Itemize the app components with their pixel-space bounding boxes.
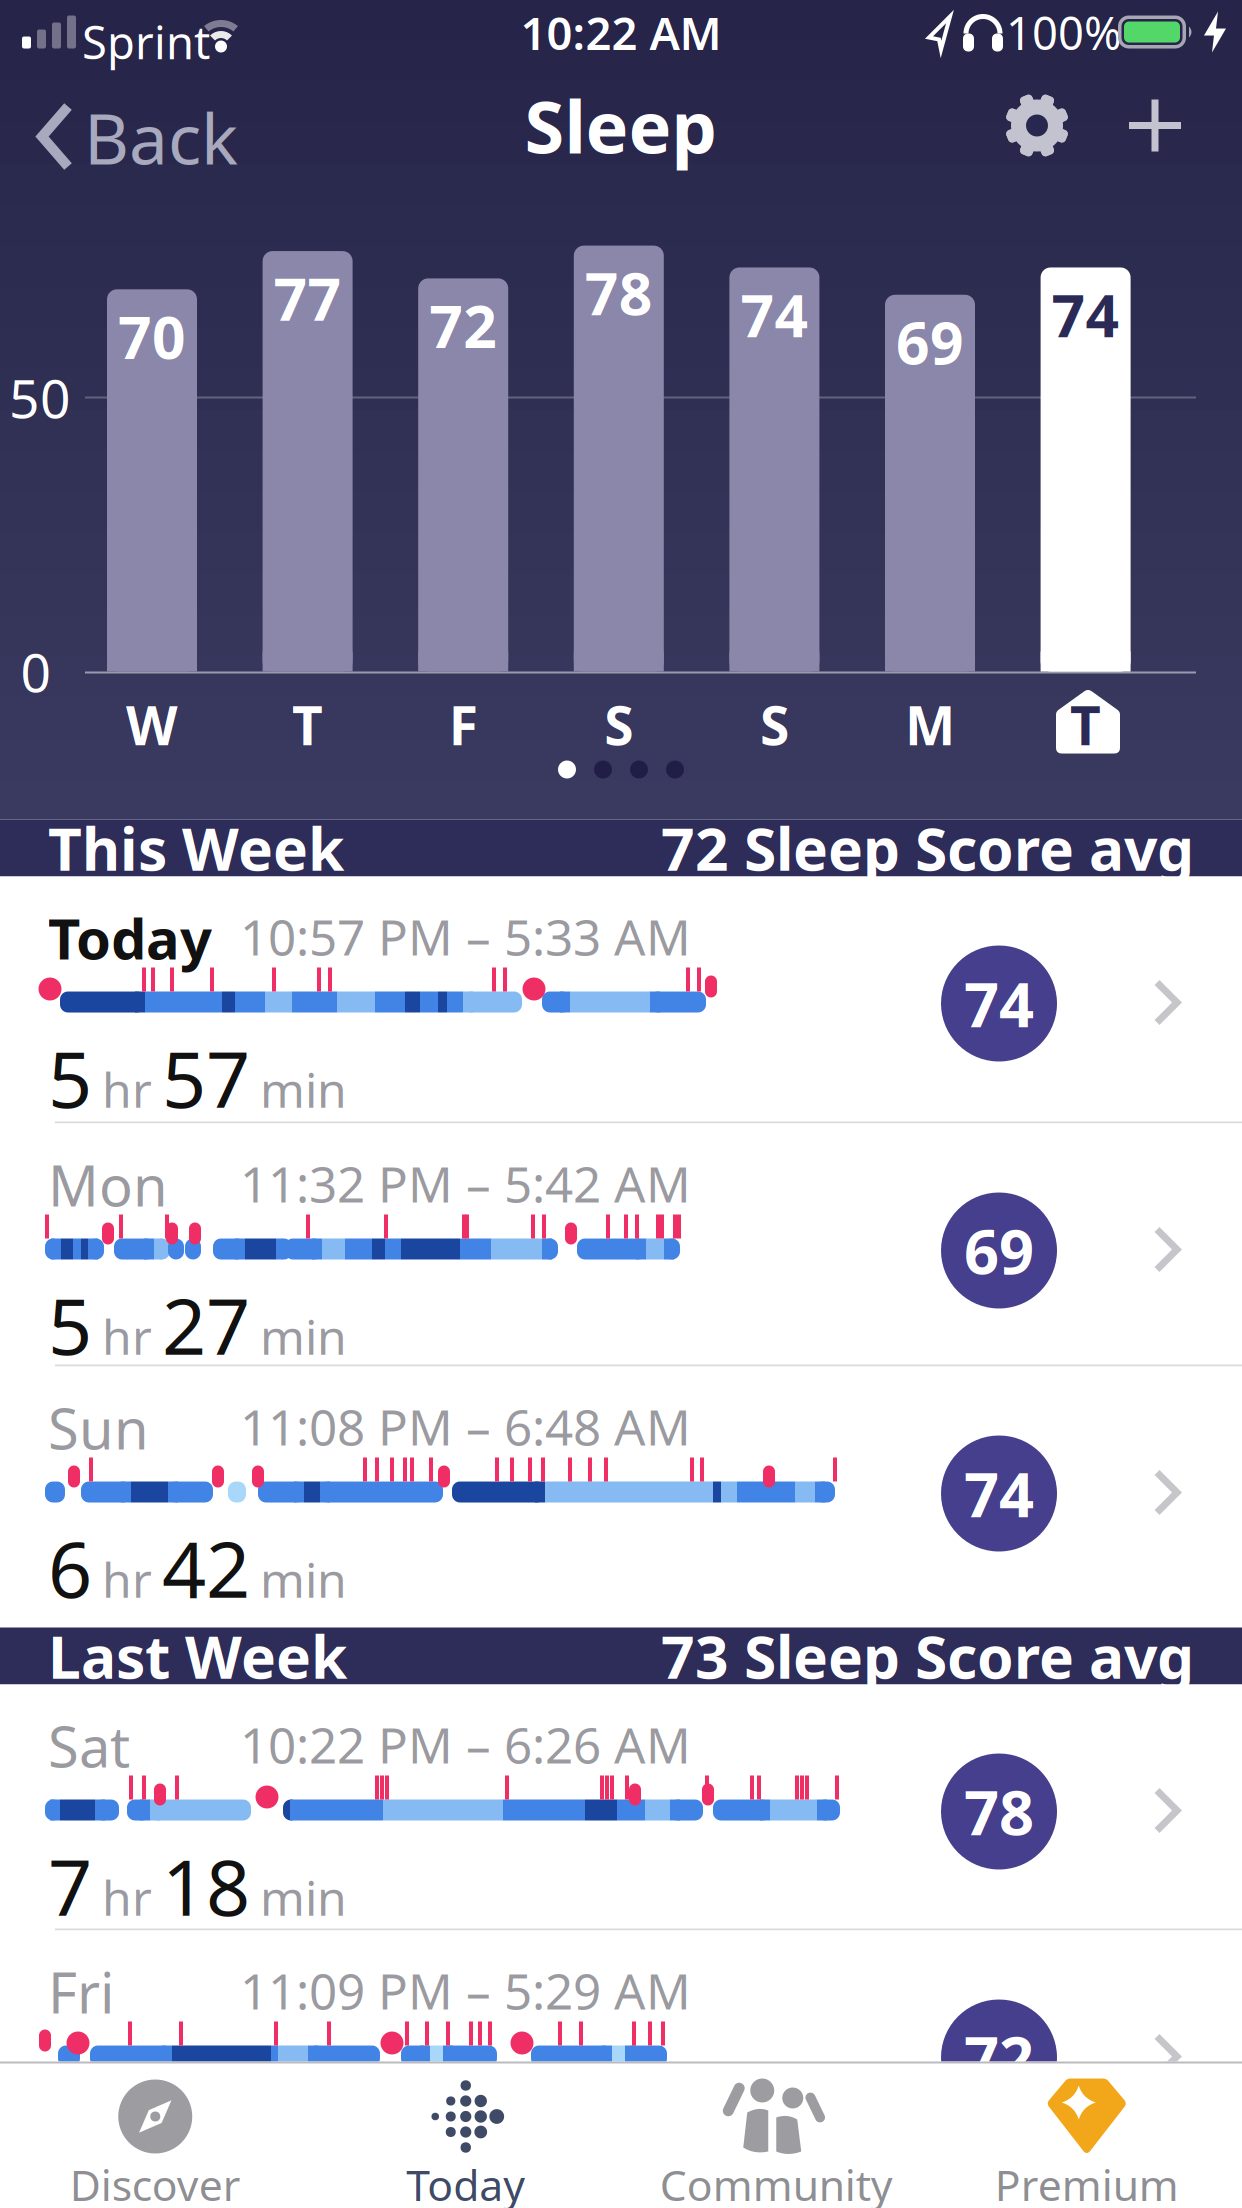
button[interactable]: Community [621,2061,931,2207]
button[interactable]: Today [310,2061,621,2207]
staticText: 57 [162,1026,250,1129]
staticText: min [260,1057,347,1121]
staticText: 69 [896,303,964,381]
button[interactable]: Sat [0,1684,1242,1930]
staticText: 18 [162,1834,250,1937]
staticText: 77 [274,259,342,337]
staticText: 69 [964,1210,1034,1291]
button[interactable]: Mon [0,1123,1242,1366]
staticText: 73 Sleep Score avg [661,1617,1194,1695]
staticText: 7 [48,1834,92,1937]
staticText: hr [102,1057,152,1121]
button[interactable]: Back [0,91,254,184]
staticText: S [760,689,789,760]
staticText: 72 [429,286,497,364]
staticText: Today [406,2156,525,2208]
staticText: Back [84,91,238,184]
staticText: 11:09 PM – 5:29 AM [240,1957,691,2023]
staticText: S [604,689,633,760]
button[interactable]: Add [1128,98,1182,152]
staticText: 50 [9,362,71,433]
staticText: Last Week [48,1617,347,1695]
staticText: min [260,1304,347,1368]
staticText: 74 [1052,275,1120,353]
staticText: 5 [48,1026,92,1129]
staticText: Mon [48,1147,168,1222]
staticText: 11:08 PM – 6:48 AM [240,1393,691,1459]
staticText: Today [48,900,212,975]
staticText: 78 [964,1771,1034,1852]
button[interactable]: Premium [931,2061,1242,2207]
staticText: 6 [48,1516,92,1619]
staticText: Sun [48,1390,149,1465]
staticText: M [905,689,955,760]
staticText: 0 [20,636,51,707]
staticText: min [260,1547,347,1611]
staticText: 74 [964,963,1034,1044]
staticText: min [260,1865,347,1929]
staticText: 74 [740,275,808,353]
staticText: Sleep [524,78,717,173]
staticText: 42 [162,1516,250,1619]
button[interactable]: Discover [0,2061,310,2207]
staticText: 74 [964,1453,1034,1534]
staticText: hr [58,2111,108,2175]
staticText: Fri [48,1954,114,2029]
staticText: W [126,689,178,760]
staticText: 72 Sleep Score avg [661,809,1194,887]
staticText: hr [102,1865,152,1929]
staticText: 10:22 PM – 6:26 AM [240,1711,691,1777]
staticText: 72 [964,2017,1034,2098]
staticText: min [128,2111,215,2175]
staticText: Discover [70,2156,241,2208]
button[interactable]: Fri [0,1930,1242,2208]
button[interactable]: Sun [0,1366,1242,1627]
button[interactable]: Today [0,876,1242,1123]
staticText: 100% [1006,2,1122,63]
staticText: Sat [48,1708,130,1783]
button[interactable]: Settings [1005,93,1069,157]
staticText: T [1070,689,1101,760]
staticText: Sprint [82,11,210,72]
staticText: 11:32 PM – 5:42 AM [240,1150,691,1216]
staticText: Premium [995,2156,1179,2208]
staticText: This Week [48,809,344,887]
staticText: 10:57 PM – 5:33 AM [240,903,691,969]
staticText: hr [102,1304,152,1368]
staticText: 70 [118,297,186,375]
staticText: 27 [162,1273,250,1376]
staticText: 5 [48,1273,92,1376]
staticText: 10:22 AM [520,2,721,63]
staticText: 78 [585,254,653,331]
staticText: T [292,689,323,760]
staticText: Community [660,2156,893,2208]
staticText: F [449,689,478,760]
staticText: hr [102,1547,152,1611]
